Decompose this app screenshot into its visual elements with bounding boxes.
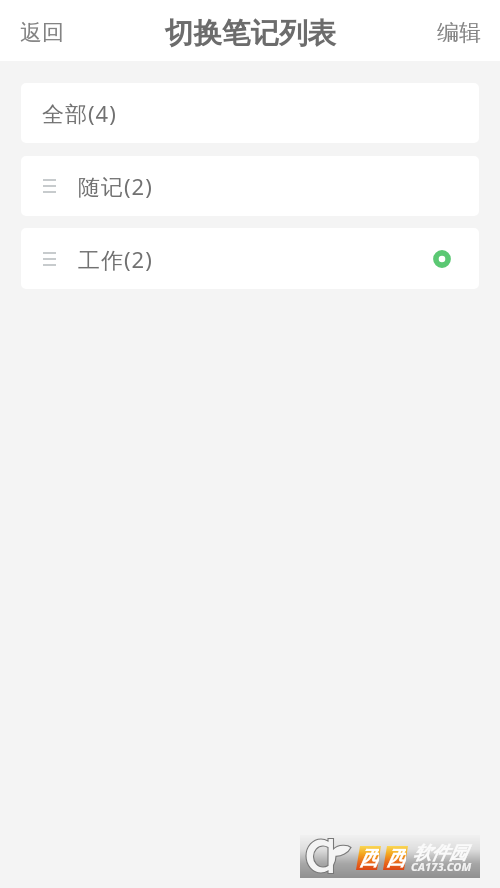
- button[interactable]: Reorder: [21, 156, 479, 216]
- staticText: CA173.COM: [411, 859, 472, 874]
- other: Selected: [433, 250, 451, 268]
- staticText: 随记(2): [78, 171, 153, 201]
- other: Reorder: [43, 252, 56, 266]
- button[interactable]: 返回: [10, 11, 74, 55]
- staticText: 西: [359, 846, 379, 870]
- other: Reorder: [43, 179, 56, 193]
- button[interactable]: 全部(4): [21, 83, 479, 143]
- staticText: 返回: [20, 19, 64, 47]
- staticText: 切换笔记列表: [165, 16, 336, 52]
- staticText: 全部(4): [42, 98, 117, 128]
- staticText: 工作(2): [78, 244, 153, 274]
- staticText: 软件园: [413, 842, 467, 865]
- button[interactable]: Reorder: [21, 228, 479, 289]
- staticText: 西: [386, 846, 406, 870]
- staticText: 编辑: [437, 19, 481, 47]
- button[interactable]: 编辑: [427, 11, 491, 55]
